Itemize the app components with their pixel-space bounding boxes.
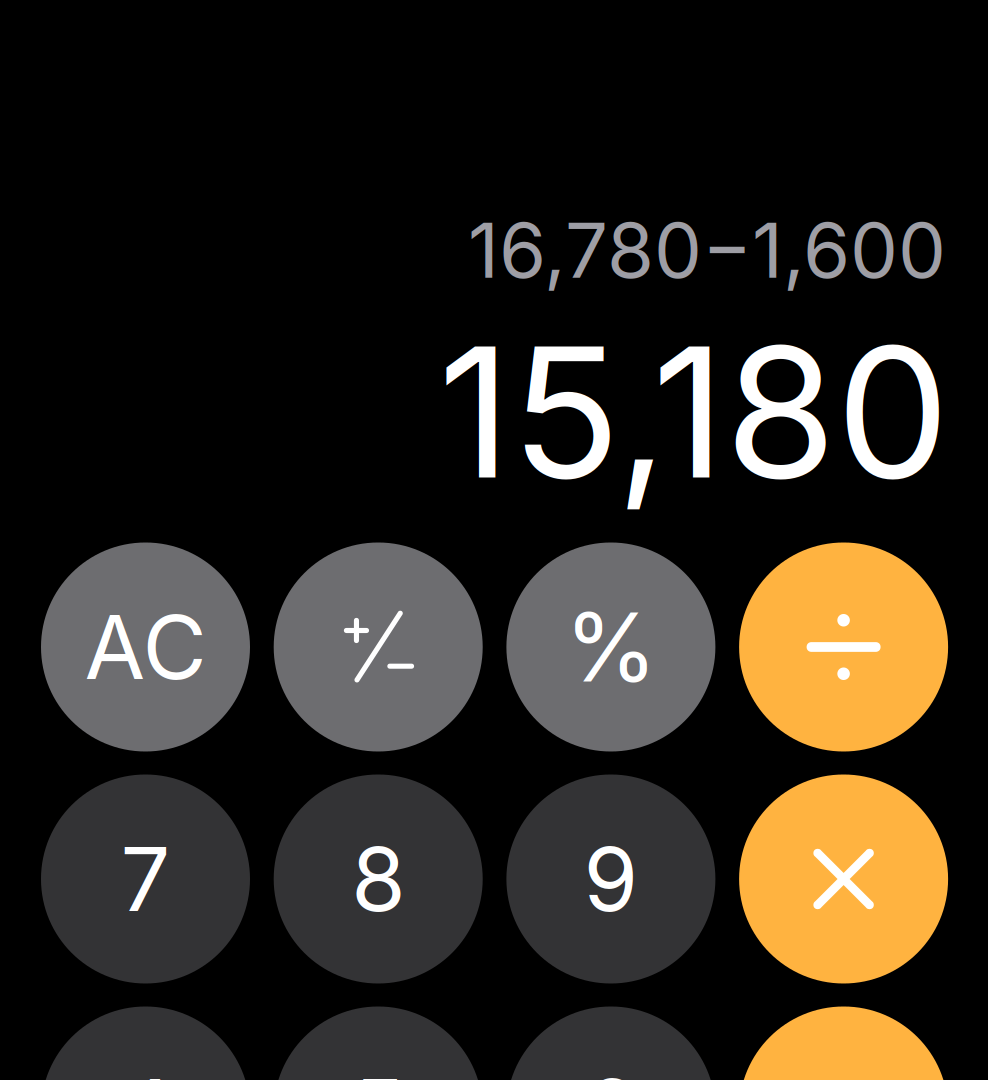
staticText: 8	[351, 826, 405, 932]
button[interactable]: All clear	[41, 542, 250, 751]
button[interactable]: Minus	[739, 1006, 948, 1080]
staticText: %	[564, 590, 657, 704]
button[interactable]: Six	[506, 1006, 715, 1080]
button[interactable]: Seven	[41, 774, 250, 983]
staticText: 5	[352, 1058, 405, 1080]
staticText: 16,780−1,600	[468, 204, 946, 296]
button[interactable]: Divide	[739, 542, 948, 751]
button[interactable]: Nine	[506, 774, 715, 983]
button[interactable]: Eight	[274, 774, 483, 983]
button[interactable]: Percent	[506, 542, 715, 751]
staticText: 15,180	[438, 303, 950, 521]
button[interactable]: Four	[41, 1006, 250, 1080]
button[interactable]: Multiply	[739, 774, 948, 983]
staticText: 6	[583, 1058, 638, 1080]
staticText: 9	[583, 826, 638, 932]
staticText: AC	[84, 594, 206, 700]
staticText: 7	[120, 826, 170, 932]
button[interactable]: Five	[274, 1006, 483, 1080]
button[interactable]: Plus minus	[274, 542, 483, 751]
staticText: 4	[117, 1058, 174, 1080]
